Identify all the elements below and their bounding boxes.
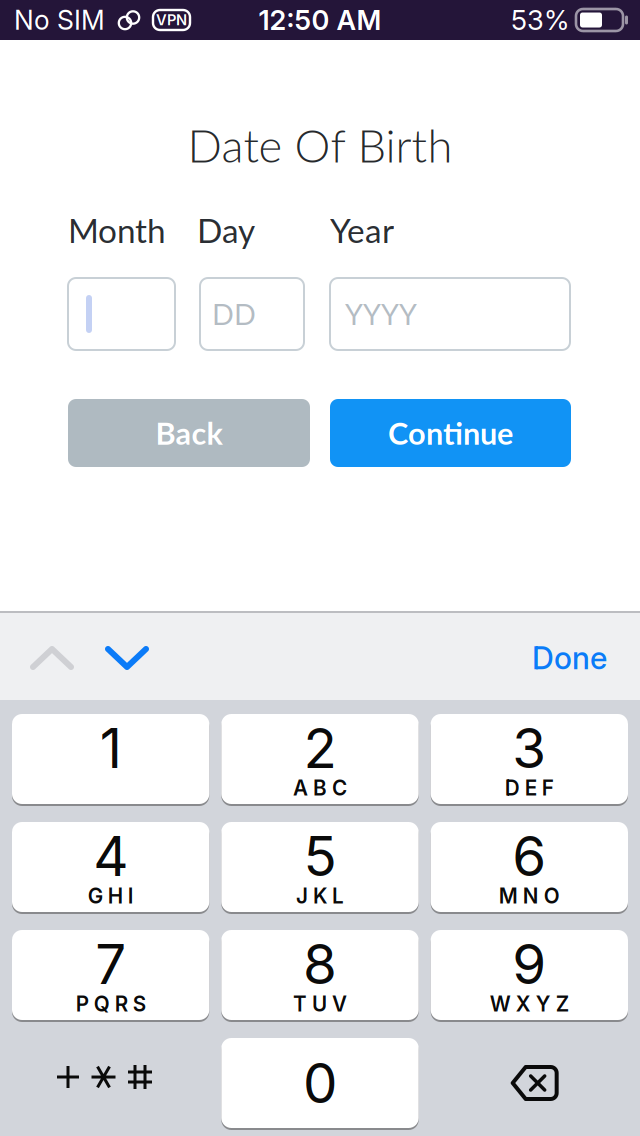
staticText: 9 (512, 931, 546, 997)
button[interactable]: 1 (12, 714, 209, 804)
staticText: 1 (100, 715, 122, 781)
staticText: J K L (296, 883, 344, 908)
button[interactable]: Continue (330, 399, 571, 467)
staticText: Year (330, 210, 394, 250)
button[interactable]: 5 (221, 822, 419, 912)
staticText: Done (532, 639, 607, 676)
button[interactable]: Back (68, 399, 310, 467)
staticText: 7 (95, 931, 126, 997)
button[interactable]: Month (68, 278, 175, 350)
button[interactable]: 7 (12, 930, 209, 1020)
button[interactable]: Year (330, 278, 570, 350)
staticText: 5 (303, 823, 336, 889)
staticText: VPN (156, 11, 187, 29)
button[interactable]: Symbols (12, 1038, 209, 1128)
staticText: T U V (293, 991, 347, 1016)
staticText: M N O (499, 883, 560, 908)
staticText: Month (68, 210, 166, 250)
staticText: 8 (303, 931, 337, 997)
button[interactable]: 3 (431, 714, 628, 804)
button[interactable]: Delete (431, 1038, 628, 1128)
staticText: G H I (88, 883, 134, 908)
staticText: Continue (388, 415, 513, 451)
staticText: 2 (303, 715, 336, 781)
staticText: Date Of Birth (187, 118, 452, 172)
button[interactable]: 2 (221, 714, 419, 804)
staticText: 4 (93, 823, 128, 889)
staticText: P Q R S (76, 991, 146, 1016)
staticText: A B C (293, 775, 347, 800)
button[interactable]: Previous field (30, 646, 74, 670)
staticText: 3 (512, 715, 546, 781)
button[interactable]: 9 (431, 930, 628, 1020)
button[interactable]: Next field (105, 646, 149, 670)
button[interactable]: Day (200, 278, 304, 350)
button[interactable]: 8 (221, 930, 419, 1020)
button[interactable]: 0 (221, 1038, 419, 1128)
staticText: 12:50 AM (258, 3, 381, 37)
staticText: DD (212, 297, 256, 331)
staticText: 0 (303, 1050, 337, 1116)
staticText: No SIM (14, 4, 105, 36)
button[interactable]: 4 (12, 822, 209, 912)
staticText: D E F (505, 775, 554, 800)
staticText: W X Y Z (490, 991, 569, 1016)
staticText: Back (155, 415, 222, 451)
staticText: 6 (512, 823, 546, 889)
button[interactable]: 6 (431, 822, 628, 912)
staticText: 53% (511, 3, 569, 37)
button[interactable]: Done (532, 639, 607, 676)
staticText: YYYY (345, 297, 417, 331)
staticText: Day (197, 210, 255, 250)
